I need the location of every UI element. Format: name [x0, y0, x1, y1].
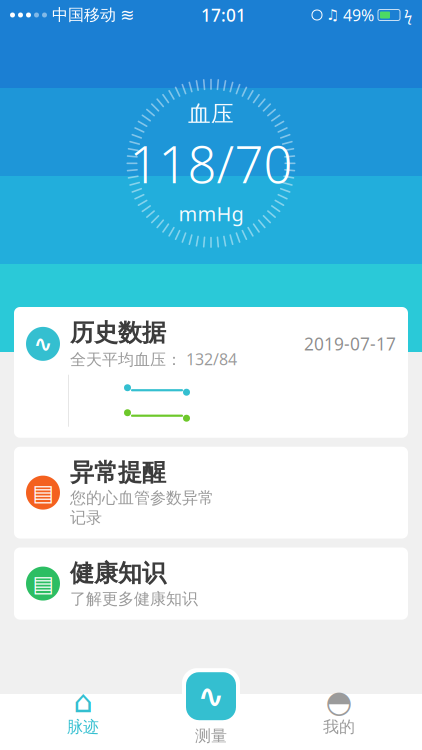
staticText: ∿ — [33, 331, 52, 357]
staticText: 2019-07-17 — [304, 332, 396, 355]
staticText: 健康知识 — [70, 558, 166, 588]
staticText: ♫ — [326, 7, 339, 23]
staticText: 您的心血管参数异常记录 — [70, 488, 214, 527]
staticText: 异常提醒 — [70, 458, 166, 487]
staticText: ≋ — [120, 5, 135, 25]
staticText: ▤ — [32, 571, 53, 596]
staticText: 历史数据 — [70, 318, 166, 347]
button[interactable]: 测量 — [166, 668, 256, 746]
staticText: 49% — [343, 4, 374, 26]
staticText: 血压 — [188, 100, 234, 128]
button[interactable]: ◓ — [256, 683, 422, 737]
staticText: 了解更多健康知识 — [70, 589, 198, 609]
button[interactable]: ∿ — [14, 307, 408, 438]
staticText: 17:01 — [201, 3, 246, 26]
staticText: ⌂ — [73, 684, 92, 719]
staticText: ∿ — [197, 678, 224, 714]
staticText: 全天平均血压： 132/84 — [70, 348, 237, 370]
staticText: ▤ — [32, 480, 53, 505]
staticText: mmHg — [178, 200, 243, 227]
staticText: ϟ — [404, 5, 412, 25]
button[interactable]: ⌂ — [0, 683, 166, 737]
button[interactable]: ▤ — [14, 447, 408, 538]
staticText: 我的 — [323, 717, 355, 737]
staticText: 中国移动 — [52, 5, 116, 25]
staticText: 测量 — [195, 726, 227, 746]
staticText: 脉迹 — [67, 717, 99, 737]
button[interactable]: ▤ — [14, 547, 408, 620]
staticText: ◓ — [325, 684, 352, 719]
staticText: 118/70 — [129, 130, 292, 197]
